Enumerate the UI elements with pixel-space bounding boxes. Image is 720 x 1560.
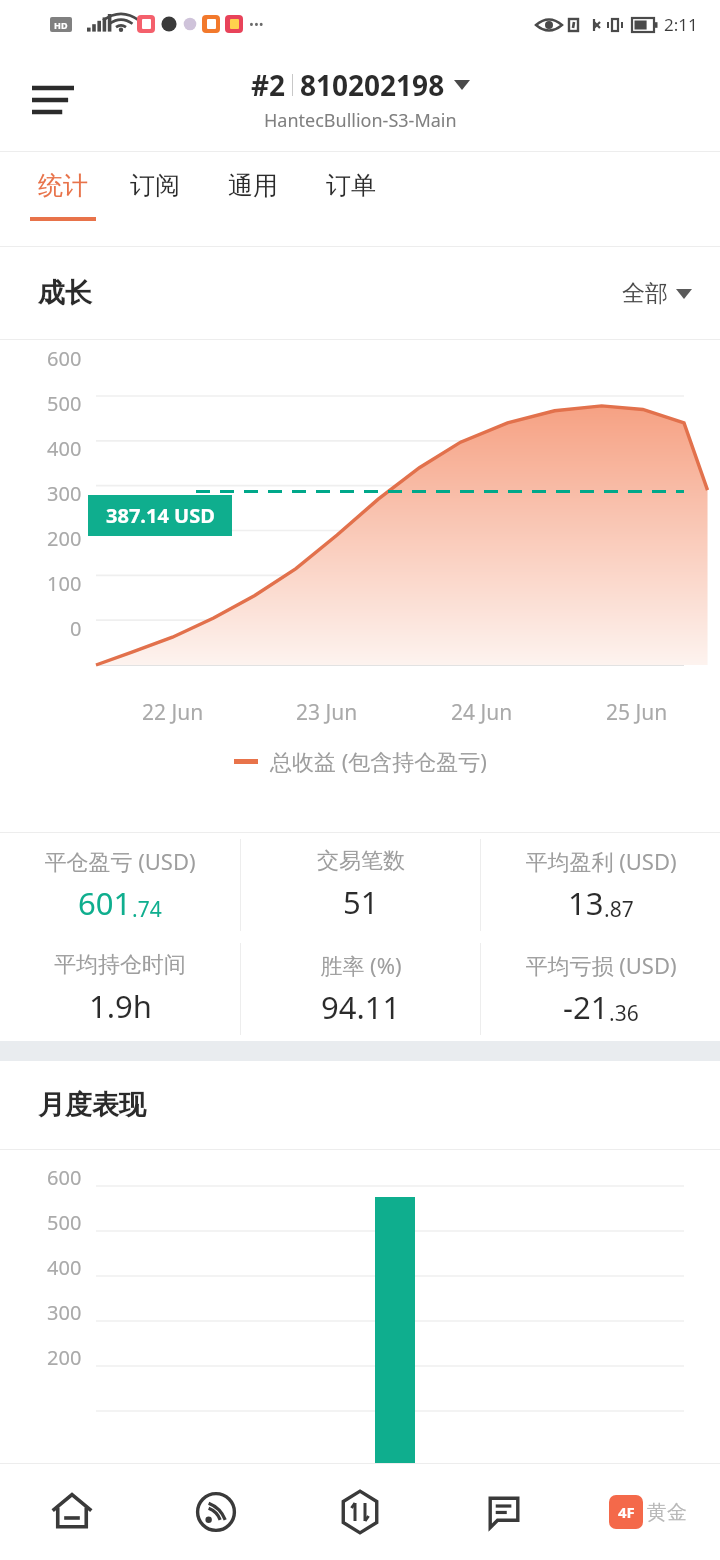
staticText: 500 bbox=[47, 390, 82, 417]
staticText: 平均盈利 (USD) bbox=[525, 846, 677, 876]
staticText: 成长 bbox=[38, 276, 92, 310]
staticText: 601 bbox=[78, 882, 132, 924]
button[interactable]: Signals bbox=[144, 1464, 288, 1560]
staticText: 810202198 bbox=[300, 66, 445, 104]
staticText: 94.11 bbox=[321, 986, 401, 1028]
staticText: 300 bbox=[47, 480, 82, 507]
staticText: 月度表现 bbox=[38, 1088, 146, 1122]
staticText: 600 bbox=[47, 345, 82, 372]
staticText: HantecBullion-S3-Main bbox=[264, 108, 457, 133]
staticText: 23 Jun bbox=[296, 698, 358, 727]
button[interactable]: Home bbox=[0, 1464, 144, 1560]
staticText: 13 bbox=[568, 882, 604, 924]
staticText: .87 bbox=[604, 895, 634, 924]
staticText: .74 bbox=[132, 895, 162, 924]
staticText: 通用 bbox=[228, 170, 278, 201]
staticText: .36 bbox=[609, 999, 639, 1028]
button[interactable]: #2 bbox=[251, 66, 470, 133]
staticText: 平仓盈亏 (USD) bbox=[44, 846, 196, 876]
staticText: 500 bbox=[47, 1209, 82, 1236]
staticText: 平均亏损 (USD) bbox=[525, 950, 677, 980]
staticText: 22 Jun bbox=[142, 698, 204, 727]
staticText: 全部 bbox=[622, 279, 668, 308]
button[interactable]: Menu bbox=[22, 69, 84, 131]
staticText: 600 bbox=[47, 1164, 82, 1191]
staticText: 1.9h bbox=[89, 985, 152, 1027]
staticText: 总收益 (包含持仓盈亏) bbox=[270, 746, 487, 776]
staticText: 300 bbox=[47, 1299, 82, 1326]
staticText: 2:11 bbox=[664, 13, 698, 36]
staticText: 51 bbox=[343, 881, 379, 923]
button[interactable]: Profile bbox=[576, 1464, 720, 1560]
staticText: 订单 bbox=[326, 170, 376, 201]
staticText: 订阅 bbox=[130, 170, 180, 201]
staticText: 200 bbox=[47, 1344, 82, 1371]
button[interactable]: 订阅 bbox=[130, 152, 228, 246]
staticText: 胜率 (%) bbox=[320, 950, 402, 980]
staticText: 387.14 USD bbox=[106, 502, 215, 529]
staticText: 400 bbox=[47, 435, 82, 462]
staticText: 平均持仓时间 bbox=[54, 951, 186, 979]
staticText: 0 bbox=[70, 615, 82, 642]
staticText: 统计 bbox=[38, 170, 88, 201]
staticText: 交易笔数 bbox=[317, 847, 405, 875]
button[interactable]: 订单 bbox=[326, 152, 424, 246]
staticText: 25 Jun bbox=[606, 698, 668, 727]
staticText: ••• bbox=[249, 15, 264, 33]
staticText: 400 bbox=[47, 1254, 82, 1281]
staticText: -21 bbox=[563, 986, 609, 1028]
button[interactable]: 通用 bbox=[228, 152, 326, 246]
button[interactable]: Messages bbox=[432, 1464, 576, 1560]
staticText: #2 bbox=[251, 66, 286, 104]
button[interactable]: 全部 bbox=[622, 279, 692, 308]
button[interactable]: 统计 bbox=[30, 152, 98, 246]
staticText: 4F bbox=[618, 1502, 635, 1522]
staticText: 100 bbox=[47, 570, 82, 597]
staticText: 黄金 bbox=[647, 1500, 687, 1525]
staticText: 24 Jun bbox=[451, 698, 513, 727]
staticText: 200 bbox=[47, 525, 82, 552]
button[interactable]: Trade bbox=[288, 1464, 432, 1560]
staticText: HD bbox=[54, 19, 68, 31]
